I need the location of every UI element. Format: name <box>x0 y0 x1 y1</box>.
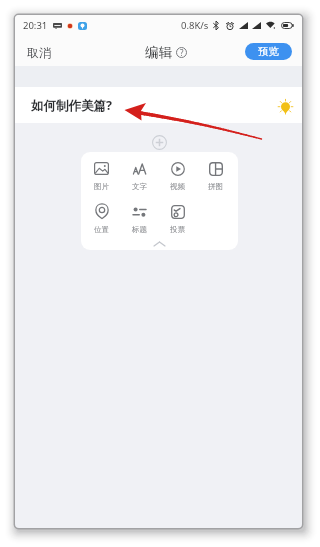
staticText: 拼图 <box>208 182 223 191</box>
staticText: 图片 <box>94 182 109 191</box>
button[interactable]: 位置 <box>82 204 120 234</box>
button[interactable]: Help <box>176 47 187 58</box>
staticText: 位置 <box>94 225 109 234</box>
staticText: 取消 <box>27 45 51 60</box>
button[interactable]: Add block <box>152 135 167 150</box>
button[interactable]: 拼图 <box>196 161 234 191</box>
button[interactable]: 文字 <box>120 161 158 191</box>
button[interactable]: 图片 <box>82 161 120 191</box>
staticText: 标题 <box>132 225 147 234</box>
staticText: 编辑 <box>145 44 172 61</box>
staticText: 预览 <box>258 45 279 58</box>
button[interactable]: 预览 <box>245 43 292 60</box>
button[interactable]: 取消 <box>15 40 63 63</box>
staticText: 文字 <box>132 182 147 191</box>
button[interactable]: 视频 <box>158 161 196 191</box>
staticText: ? <box>180 47 184 58</box>
staticText: 视频 <box>170 182 185 191</box>
button[interactable]: Tips <box>278 98 293 113</box>
staticText: 投票 <box>170 225 185 234</box>
button[interactable]: 标题 <box>120 204 158 234</box>
staticText: 0.8K/s <box>181 19 209 32</box>
button[interactable]: 投票 <box>158 204 196 234</box>
staticText: 20:31 <box>23 19 48 32</box>
staticText: 如何制作美篇? <box>31 97 112 114</box>
